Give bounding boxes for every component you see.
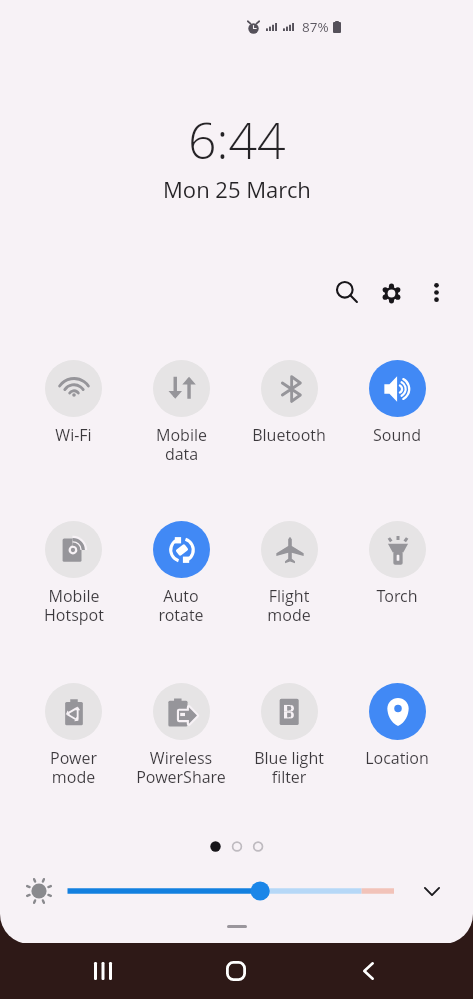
- staticText: Auto rotate: [158, 585, 204, 625]
- button[interactable]: Wi-Fi: [20, 360, 127, 446]
- staticText: Torch: [376, 585, 418, 607]
- staticText: Mobile data: [156, 424, 207, 464]
- button[interactable]: Location: [343, 683, 451, 769]
- staticText: Location: [365, 747, 429, 769]
- staticText: 6:44: [188, 106, 286, 174]
- button[interactable]: Expand brightness options: [412, 871, 452, 911]
- button[interactable]: Wireless PowerShare: [127, 683, 235, 787]
- button[interactable]: Sound: [343, 360, 451, 446]
- button[interactable]: Mobile data: [127, 360, 235, 464]
- button[interactable]: Auto rotate: [127, 521, 235, 625]
- staticText: Mobile Hotspot: [44, 585, 104, 625]
- button[interactable]: Mobile Hotspot: [20, 521, 127, 625]
- button[interactable]: Flight mode: [235, 521, 343, 625]
- button[interactable]: Back: [344, 947, 392, 995]
- button[interactable]: Settings: [367, 269, 415, 317]
- button[interactable]: Recent apps: [79, 947, 127, 995]
- staticText: Mon 25 March: [163, 174, 311, 204]
- button[interactable]: Search: [323, 268, 371, 316]
- button[interactable]: Power mode: [20, 683, 127, 787]
- staticText: Flight mode: [267, 585, 311, 625]
- staticText: Sound: [373, 424, 421, 446]
- staticText: Wireless PowerShare: [136, 747, 226, 787]
- staticText: Bluetooth: [252, 424, 326, 446]
- staticText: 87%: [302, 18, 329, 36]
- staticText: Wi-Fi: [55, 424, 92, 446]
- button[interactable]: Home: [212, 947, 260, 995]
- staticText: Power mode: [50, 747, 97, 787]
- staticText: Blue light filter: [254, 747, 324, 787]
- button[interactable]: Bluetooth: [235, 360, 343, 446]
- button[interactable]: Torch: [343, 521, 451, 607]
- button[interactable]: Blue light filter: [235, 683, 343, 787]
- button[interactable]: More options: [412, 268, 460, 316]
